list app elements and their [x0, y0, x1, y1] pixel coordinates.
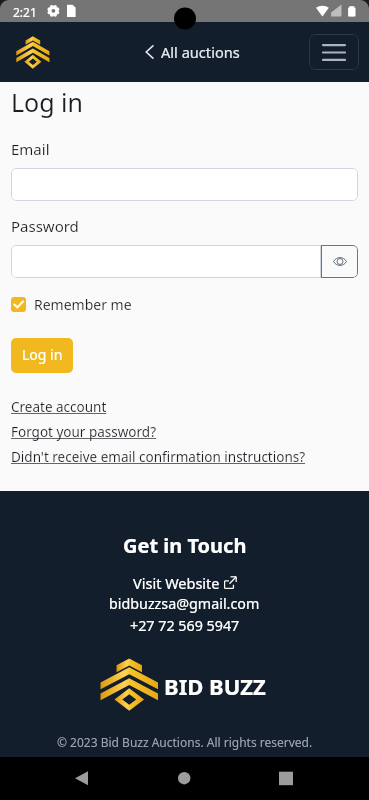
staticText: © 2023 Bid Buzz Auctions. All rights res… [57, 734, 313, 750]
button[interactable]: Menu [309, 34, 359, 70]
staticText: Email [11, 139, 50, 159]
staticText: Get in Touch [123, 532, 247, 559]
staticText: Password [11, 216, 79, 236]
button[interactable]: +27 72 569 5947 [130, 616, 240, 635]
button[interactable]: Back [57, 757, 107, 800]
button[interactable]: bidbuzzsa@gmail.com [109, 594, 260, 613]
button[interactable]: Visit Website [133, 573, 237, 593]
staticText: All auctions [161, 42, 240, 62]
staticText: BID BUZZ [164, 671, 266, 701]
button[interactable]: Home [160, 757, 210, 800]
button[interactable]: Log in [11, 338, 73, 373]
button[interactable]: Create account [11, 398, 107, 416]
staticText: Remember me [34, 295, 132, 313]
button[interactable]: Password field [11, 245, 321, 278]
button[interactable]: Bid Buzz home [16, 36, 50, 67]
button[interactable]: Email field [11, 168, 358, 201]
button[interactable]: All auctions [145, 42, 240, 62]
staticText: Forgot your password? [11, 423, 157, 441]
staticText: Create account [11, 398, 107, 416]
staticText: Visit Website [133, 573, 220, 593]
staticText: 2:21 [13, 4, 37, 20]
button[interactable]: Didn't receive email confirmation instru… [11, 448, 306, 466]
staticText: Log in [22, 345, 63, 364]
staticText: Didn't receive email confirmation instru… [11, 448, 306, 466]
button[interactable]: Remember me [11, 295, 132, 313]
button[interactable]: Show password [321, 245, 358, 278]
button[interactable]: Forgot your password? [11, 423, 157, 441]
staticText: Log in [11, 85, 84, 119]
button[interactable]: Recent apps [261, 757, 311, 800]
